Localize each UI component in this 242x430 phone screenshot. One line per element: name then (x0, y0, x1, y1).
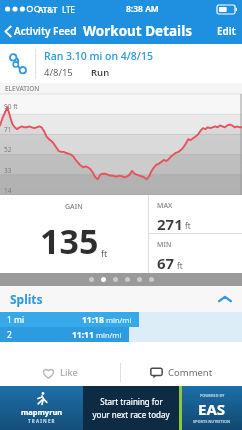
staticText: MIN (157, 240, 172, 250)
staticText: 67 (157, 253, 175, 273)
button[interactable]: GAIN (0, 195, 148, 273)
staticText: SPORTS NUTRITION (193, 419, 231, 424)
staticText: 33 (4, 166, 12, 175)
staticText: T R A I N E R (28, 418, 55, 424)
staticText: Start training for (100, 396, 163, 407)
staticText: 90 ft (4, 102, 18, 111)
staticText: ft (185, 220, 191, 231)
staticText: min/mi (106, 315, 132, 325)
staticText: ft (177, 260, 183, 271)
staticText: ft (101, 247, 108, 259)
staticText: 11:18 (82, 314, 104, 326)
staticText: 135 (40, 218, 99, 264)
staticText: your next race today (92, 409, 170, 420)
button[interactable]: 2 (0, 327, 242, 342)
staticText: ELEVATION (5, 84, 40, 93)
button[interactable]: Edit (211, 20, 242, 42)
staticText: 4/8/15 (44, 66, 73, 79)
button[interactable]: Splits (0, 286, 242, 312)
staticText: Activity Feed (14, 24, 77, 38)
button[interactable]: Comment (121, 359, 242, 386)
staticText: 1 mi (7, 314, 25, 326)
staticText: Comment (168, 366, 213, 379)
button[interactable]: Ran 3.10 mi on 4/8/15 (0, 44, 242, 83)
staticText: POWERED BY (200, 393, 225, 398)
other: Collapse splits (218, 295, 232, 303)
staticText: 2 (7, 329, 12, 341)
staticText: AT&T (38, 4, 58, 15)
staticText: 11:11 (72, 329, 94, 341)
staticText: min/mi (96, 330, 122, 340)
staticText: 8:38 AM (126, 3, 159, 15)
button[interactable]: mapmyrun (0, 386, 242, 430)
staticText: Like (60, 366, 78, 379)
staticText: Workout Details (83, 22, 192, 40)
staticText: Edit (217, 24, 236, 38)
staticText: Ran 3.10 mi on 4/8/15 (44, 49, 153, 63)
staticText: EAS (198, 399, 226, 419)
staticText: MAX (157, 201, 173, 211)
staticText: 52 (4, 145, 12, 154)
staticText: 14 (4, 186, 12, 195)
staticText: Splits (10, 291, 43, 307)
staticText: GAIN (65, 202, 83, 212)
staticText: Run (91, 66, 110, 79)
button[interactable]: 1 mi (0, 312, 242, 327)
button[interactable]: Activity Feed (0, 21, 79, 41)
button[interactable]: MAX (149, 195, 242, 233)
button[interactable]: MIN (149, 234, 242, 273)
staticText: mapmyrun (21, 407, 63, 417)
staticText: 71 (4, 125, 12, 134)
button[interactable]: Like (0, 359, 120, 386)
staticText: 271 (157, 214, 183, 233)
staticText: LTE (62, 4, 75, 15)
